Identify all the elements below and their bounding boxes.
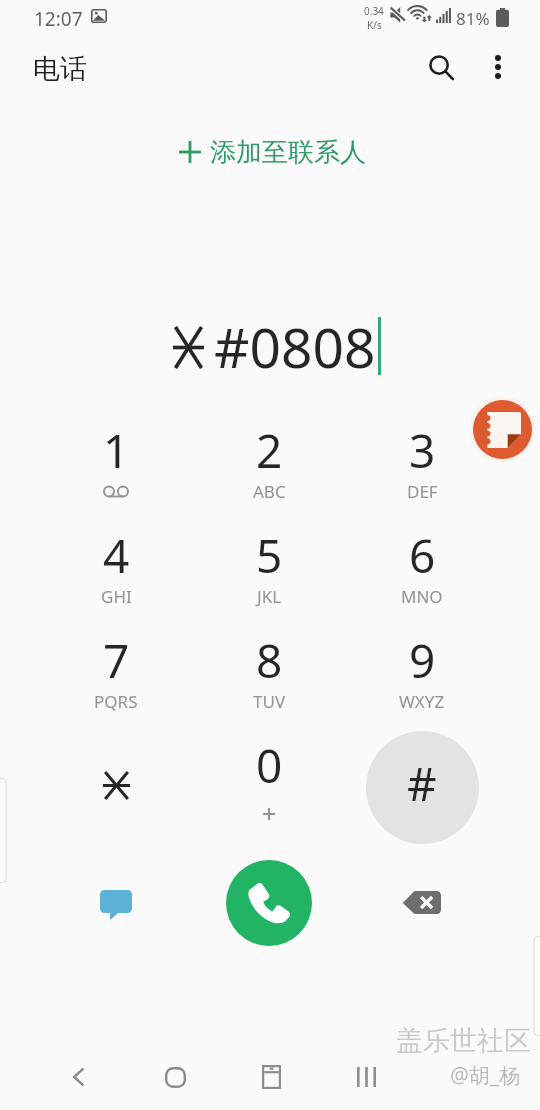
button[interactable]: Backspace: [372, 852, 472, 952]
button[interactable]: More options: [475, 44, 521, 90]
button[interactable]: Search: [418, 44, 464, 90]
staticText: DEF: [407, 480, 438, 503]
button[interactable]: 1: [40, 399, 192, 504]
staticText: 0.34: [364, 4, 384, 18]
staticText: 2: [256, 419, 283, 482]
staticText: WXYZ: [399, 690, 445, 713]
button[interactable]: 6: [346, 504, 498, 609]
staticText: GHI: [101, 585, 132, 608]
staticText: JKL: [257, 585, 282, 608]
button[interactable]: Recents: [244, 1050, 298, 1104]
staticText: MNO: [401, 585, 443, 608]
staticText: TUV: [253, 690, 286, 713]
staticText: ABC: [253, 480, 286, 503]
staticText: 0: [256, 734, 283, 797]
button[interactable]: 2: [193, 399, 345, 504]
button[interactable]: 4: [40, 504, 192, 609]
staticText: 8: [256, 629, 283, 692]
staticText: 添加至联系人: [210, 136, 366, 169]
staticText: 电话: [33, 52, 87, 86]
staticText: 81%: [456, 7, 490, 30]
staticText: @胡_杨: [450, 1061, 521, 1090]
staticText: 3: [409, 419, 436, 482]
staticText: 12:07: [34, 6, 83, 32]
staticText: PQRS: [94, 690, 138, 713]
button[interactable]: Message: [66, 853, 166, 953]
staticText: 盖乐世社区: [396, 1024, 531, 1058]
staticText: 5: [256, 524, 283, 587]
button[interactable]: 3: [346, 399, 498, 504]
button[interactable]: 0: [193, 714, 345, 819]
staticText: 7: [103, 629, 130, 692]
button[interactable]: 9: [346, 609, 498, 714]
button[interactable]: Call: [226, 860, 312, 946]
button[interactable]: Floating notes shortcut: [469, 396, 535, 462]
button[interactable]: 添加至联系人: [167, 129, 378, 175]
staticText: 1: [103, 419, 130, 482]
staticText: K/s: [367, 18, 382, 32]
staticText: 4: [103, 524, 130, 587]
button[interactable]: 8: [193, 609, 345, 714]
button[interactable]: Back: [51, 1050, 105, 1104]
button[interactable]: Menu: [339, 1050, 393, 1104]
staticText: #0808: [214, 309, 376, 381]
button[interactable]: 5: [193, 504, 345, 609]
button[interactable]: #: [346, 714, 498, 819]
staticText: 6: [409, 524, 436, 587]
button[interactable]: Home: [148, 1050, 202, 1104]
button[interactable]: [40, 714, 192, 819]
button[interactable]: 7: [40, 609, 192, 714]
staticText: 9: [409, 629, 436, 692]
staticText: #: [407, 752, 437, 815]
